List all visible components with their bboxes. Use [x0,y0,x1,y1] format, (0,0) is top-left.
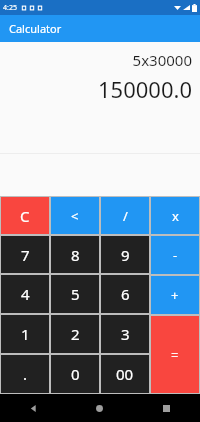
staticText: 4:25 [3,3,17,13]
button[interactable]: 8 [51,236,99,273]
button[interactable]: 9 [101,236,149,273]
button[interactable]: x [151,197,199,234]
button[interactable]: 4 [1,275,49,313]
button[interactable]: = [151,316,199,393]
staticText: 5x30000 [0,50,192,70]
button[interactable]: < [51,197,99,234]
button[interactable]: C [1,197,49,234]
button[interactable]: . [1,355,49,393]
staticText: 2 [71,324,80,344]
staticText: 3 [121,324,130,344]
button[interactable]: 1 [1,315,49,353]
button[interactable]: Calculator [0,15,200,42]
staticText: = [171,346,179,364]
staticText: 1 [21,324,30,344]
button[interactable]: 5 [51,275,99,313]
staticText: x [172,207,179,225]
button[interactable]: 7 [1,236,49,273]
staticText: 9 [121,245,130,265]
button[interactable]: 3 [101,315,149,353]
staticText: + [171,286,179,304]
staticText: C [20,206,30,226]
button[interactable]: Recents [133,394,200,422]
staticText: 4 [21,284,30,304]
button[interactable]: 6 [101,275,149,313]
staticText: 0 [71,364,80,384]
staticText: 8 [71,245,80,265]
staticText: 00 [116,364,134,384]
staticText: 6 [121,284,130,304]
staticText: Calculator [9,21,62,36]
button[interactable]: 00 [101,355,149,393]
button[interactable]: 2 [51,315,99,353]
staticText: - [173,246,178,264]
staticText: / [123,207,128,225]
button[interactable]: - [151,236,199,274]
staticText: < [71,207,79,225]
button[interactable]: Back [0,394,66,422]
button[interactable]: 0 [51,355,99,393]
staticText: 150000.0 [0,74,192,104]
button[interactable]: + [151,276,199,314]
staticText: . [23,364,28,384]
staticText: 5 [71,284,80,304]
staticText: 7 [21,245,30,265]
button[interactable]: Home [66,394,133,422]
button[interactable]: / [101,197,149,234]
